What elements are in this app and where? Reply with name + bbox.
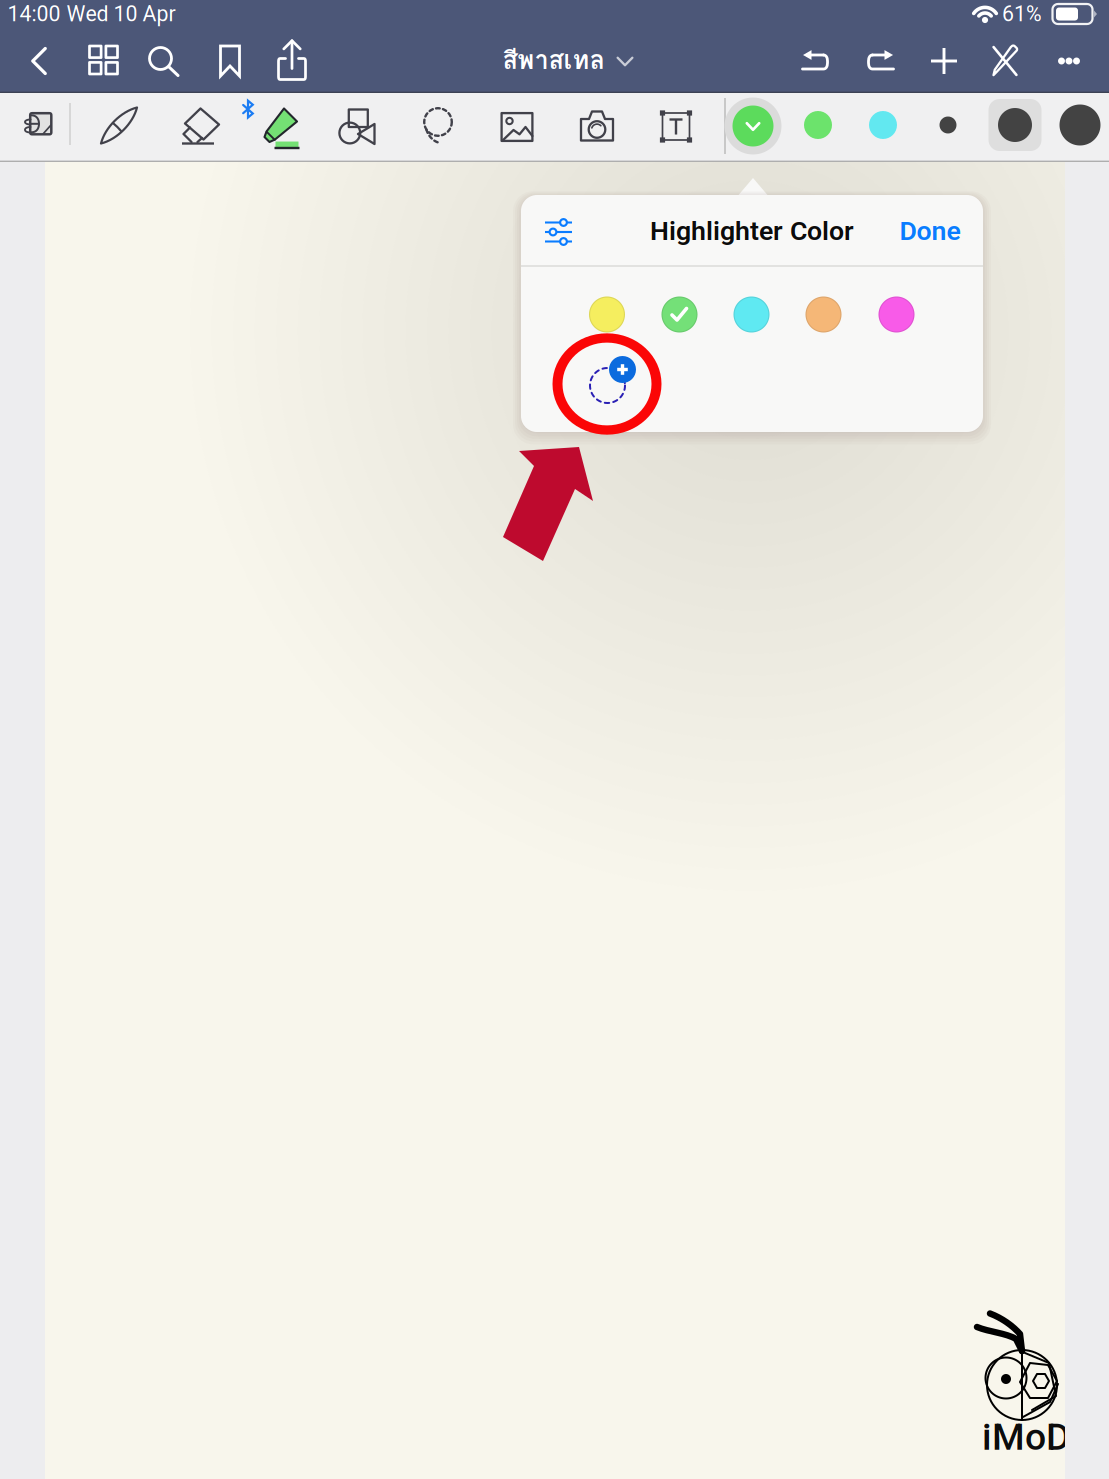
button[interactable]: Image [485,96,549,158]
button[interactable]: Selected highlighter colour [722,95,784,157]
button[interactable]: Done [885,200,975,262]
button[interactable]: Undo [788,32,842,88]
button[interactable]: Share [266,32,318,88]
button[interactable]: Orange [799,290,847,338]
button[interactable]: Thin black [921,97,975,153]
button[interactable]: Thumbnails [77,32,129,88]
button[interactable]: Green [655,290,703,338]
staticText: 61% [1002,1,1042,26]
button[interactable]: Redo [854,32,908,88]
staticText: Wed 10 Apr [66,1,175,26]
button[interactable]: Lasso [406,95,470,157]
button[interactable]: Highlighter [247,97,311,159]
button[interactable]: Bookmark [204,33,256,89]
button[interactable]: Add colour [583,355,635,403]
button[interactable]: Back [13,33,65,89]
button[interactable]: Black selected [987,97,1043,153]
button[interactable]: Camera [565,95,629,157]
button[interactable]: More [1042,33,1096,89]
button[interactable]: สีพาสเทล [438,32,698,88]
staticText: สีพาสเทล [502,40,604,80]
button[interactable]: Cyan [727,290,775,338]
button[interactable]: Adjust colour [527,201,589,263]
button[interactable]: Page mode [7,94,67,154]
staticText: Highlighter Color [650,215,854,247]
button[interactable]: Search [138,34,190,90]
button[interactable]: Cyan [856,97,910,153]
staticText: 14:00 [7,1,60,26]
button[interactable]: Shapes [325,95,389,157]
staticText: iMoD [982,1415,1070,1459]
button[interactable]: Pen [87,94,151,156]
button[interactable]: Text box [644,95,708,157]
button[interactable]: Add page [917,33,971,89]
staticText: Done [899,215,960,247]
button[interactable]: Black large [1053,97,1107,153]
button[interactable]: Magenta [872,290,920,338]
button[interactable]: Green [791,97,845,153]
button[interactable]: Read only [978,33,1032,89]
button[interactable]: Eraser [169,95,233,157]
button[interactable]: Yellow [583,290,631,338]
